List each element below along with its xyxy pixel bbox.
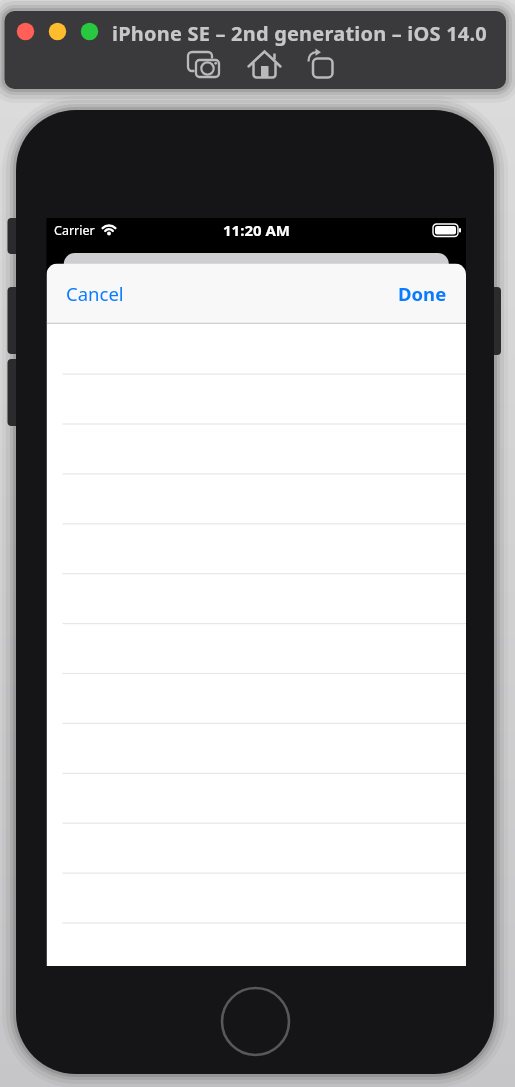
- staticText: 11:20 AM: [223, 220, 290, 239]
- button[interactable]: [219, 985, 292, 1058]
- staticText: Done: [398, 281, 447, 306]
- button[interactable]: Done: [346, 266, 466, 320]
- button[interactable]: Cancel: [47, 266, 167, 320]
- button[interactable]: [303, 48, 339, 82]
- button[interactable]: [245, 48, 285, 82]
- staticText: Cancel: [66, 281, 124, 306]
- staticText: iPhone SE – 2nd generation – iOS 14.0: [112, 20, 487, 47]
- button[interactable]: [184, 48, 224, 82]
- staticText: Carrier: [54, 222, 95, 239]
